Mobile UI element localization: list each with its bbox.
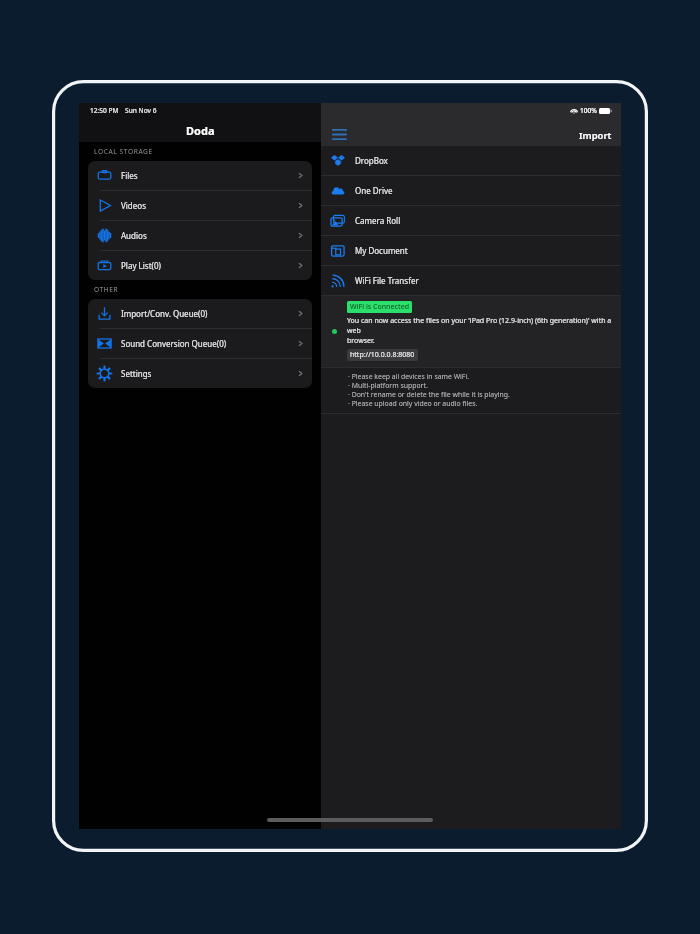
- staticText: Doda: [186, 123, 215, 138]
- button[interactable]: My Document: [321, 236, 621, 265]
- staticText: WiFi File Transfer: [355, 275, 419, 286]
- staticText: WiFi is Connected: [350, 302, 409, 312]
- staticText: OTHER: [94, 285, 119, 294]
- button[interactable]: Sound Conversion Queue(0): [88, 329, 312, 358]
- staticText: Import/Conv. Queue(0): [121, 308, 208, 319]
- staticText: 12:50 PM: [90, 106, 119, 115]
- button[interactable]: Menu: [328, 126, 350, 142]
- staticText: Audios: [121, 230, 147, 241]
- button[interactable]: One Drive: [321, 176, 621, 205]
- button[interactable]: Play List(0): [88, 251, 312, 280]
- staticText: · Please keep all devices in same WiFi.: [348, 372, 470, 381]
- button[interactable]: Audios: [88, 221, 312, 250]
- button[interactable]: Import/Conv. Queue(0): [88, 299, 312, 328]
- staticText: Import: [579, 129, 612, 142]
- staticText: Sun Nov 6: [125, 106, 157, 115]
- staticText: · Don't rename or delete the file while …: [348, 390, 510, 399]
- button[interactable]: DropBox: [321, 146, 621, 175]
- staticText: One Drive: [355, 185, 393, 196]
- staticText: Play List(0): [121, 260, 161, 271]
- staticText: http://10.0.0.8:8080: [350, 350, 415, 360]
- staticText: Sound Conversion Queue(0): [121, 338, 227, 349]
- staticText: · Multi-platform support.: [348, 381, 428, 390]
- staticText: Camera Roll: [355, 215, 401, 226]
- staticText: Videos: [121, 200, 146, 211]
- staticText: Settings: [121, 368, 152, 379]
- button[interactable]: Videos: [88, 191, 312, 220]
- button[interactable]: Camera Roll: [321, 206, 621, 235]
- button[interactable]: Import: [576, 127, 615, 144]
- staticText: Files: [121, 170, 138, 181]
- staticText: You can now access the files on your 'iP…: [347, 316, 617, 346]
- button[interactable]: Settings: [88, 359, 312, 388]
- staticText: · Please upload only video or audio file…: [348, 399, 478, 408]
- button[interactable]: WiFi File Transfer: [321, 266, 621, 295]
- button[interactable]: Files: [88, 161, 312, 190]
- staticText: LOCAL STORAGE: [94, 147, 153, 156]
- staticText: 100%: [580, 106, 597, 115]
- staticText: My Document: [355, 245, 408, 256]
- staticText: DropBox: [355, 155, 388, 166]
